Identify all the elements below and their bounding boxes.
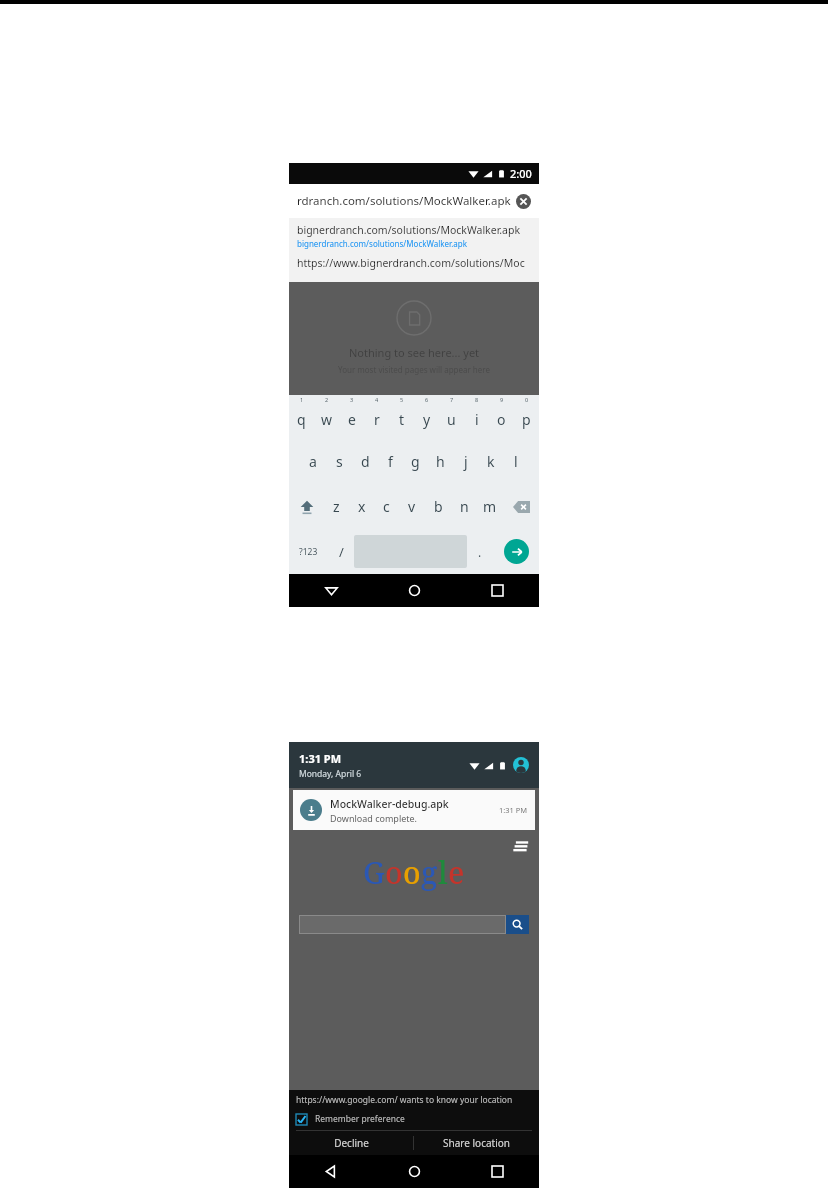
button[interactable]: j — [453, 439, 478, 484]
staticText: 0 — [525, 396, 529, 403]
button[interactable]: 3 — [339, 395, 364, 439]
staticText: c — [383, 497, 390, 516]
staticText: i — [475, 410, 479, 429]
button[interactable]: g — [403, 439, 428, 484]
button[interactable]: Back — [289, 1155, 373, 1188]
button[interactable]: Clear text — [516, 194, 531, 209]
button[interactable]: 8 — [464, 395, 489, 439]
staticText: 4 — [375, 396, 379, 403]
button[interactable]: l — [503, 439, 528, 484]
staticText: w — [321, 410, 333, 429]
staticText: d — [361, 452, 370, 471]
button[interactable]: 4 — [364, 395, 389, 439]
button[interactable]: Shift — [289, 484, 324, 529]
staticText: g — [411, 452, 420, 471]
staticText: Download complete. — [330, 812, 418, 824]
staticText: s — [336, 452, 343, 471]
staticText: bignerdranch.com/solutions/MockWalker.ap… — [297, 223, 521, 237]
button[interactable]: 1 — [289, 395, 314, 439]
staticText: Nothing to see here... yet — [349, 345, 480, 360]
staticText: o — [385, 852, 403, 893]
staticText: m — [483, 497, 497, 516]
button[interactable]: d — [352, 439, 378, 484]
button[interactable]: n — [451, 484, 477, 529]
staticText: ?123 — [299, 546, 318, 558]
button[interactable]: k — [478, 439, 503, 484]
staticText: f — [388, 452, 393, 471]
button[interactable]: Search box — [299, 915, 506, 934]
staticText: r — [374, 410, 380, 429]
staticText: v — [408, 497, 416, 516]
staticText: t — [399, 410, 405, 429]
staticText: 8 — [475, 396, 479, 403]
button[interactable]: User profile — [513, 757, 529, 773]
staticText: Your most visited pages will appear here — [338, 364, 490, 375]
button[interactable]: rdranch.com/solutions/MockWalker.apk — [289, 184, 539, 218]
button[interactable]: 9 — [489, 395, 514, 439]
staticText: k — [487, 452, 495, 471]
button[interactable]: bignerdranch.com/solutions/MockWalker.ap… — [289, 220, 539, 252]
staticText: n — [460, 497, 469, 516]
button[interactable]: Home — [373, 574, 456, 607]
staticText: a — [309, 452, 317, 471]
button[interactable]: b — [425, 484, 451, 529]
button[interactable]: 2 — [314, 395, 339, 439]
staticText: G — [363, 852, 385, 893]
button[interactable]: Recent apps — [456, 1155, 539, 1188]
button[interactable]: h — [428, 439, 453, 484]
staticText: q — [297, 410, 306, 429]
staticText: MockWalker-debug.apk — [330, 797, 449, 811]
staticText: Decline — [334, 1136, 369, 1150]
staticText: 1 — [300, 396, 304, 403]
staticText: o — [403, 852, 421, 893]
staticText: 9 — [500, 396, 504, 403]
staticText: j — [464, 452, 468, 471]
button[interactable]: s — [326, 439, 352, 484]
staticText: 2:00 — [510, 166, 532, 181]
button[interactable]: Recent apps — [456, 574, 539, 607]
button[interactable]: Remember preference — [289, 1113, 539, 1125]
staticText: x — [358, 497, 366, 516]
button[interactable]: 5 — [389, 395, 414, 439]
button[interactable]: m — [477, 484, 503, 529]
button[interactable]: Go — [504, 539, 529, 564]
staticText: p — [522, 410, 531, 429]
staticText: g — [421, 852, 438, 893]
staticText: / — [339, 543, 344, 561]
button[interactable]: v — [399, 484, 425, 529]
staticText: e — [348, 410, 356, 429]
button[interactable]: a — [300, 439, 326, 484]
staticText: 1:31 PM — [499, 805, 528, 815]
button[interactable]: Menu — [513, 838, 529, 854]
button[interactable]: ?123 — [289, 529, 328, 574]
staticText: 5 — [400, 396, 404, 403]
button[interactable]: 6 — [414, 395, 439, 439]
staticText: Share location — [443, 1136, 510, 1150]
staticText: 1:31 PM — [299, 751, 342, 766]
staticText: b — [434, 497, 443, 516]
button[interactable]: https://www.bignerdranch.com/solutions/M… — [289, 256, 539, 270]
button[interactable]: Home — [373, 1155, 456, 1188]
button[interactable]: z — [324, 484, 349, 529]
button[interactable]: Share location — [414, 1131, 539, 1155]
staticText: https://www.bignerdranch.com/solutions/M… — [297, 256, 525, 270]
button[interactable]: x — [349, 484, 374, 529]
button[interactable]: 0 — [514, 395, 539, 439]
button[interactable]: . — [467, 529, 493, 574]
button[interactable]: Decline — [289, 1131, 413, 1155]
button[interactable]: Back — [289, 574, 373, 607]
button[interactable]: f — [378, 439, 403, 484]
staticText: Remember preference — [315, 1113, 405, 1125]
staticText: l — [438, 852, 448, 893]
button[interactable]: / — [328, 529, 354, 574]
button[interactable]: c — [374, 484, 399, 529]
button[interactable]: Search — [506, 915, 529, 934]
staticText: 7 — [450, 396, 454, 403]
staticText: . — [478, 544, 482, 560]
button[interactable]: 7 — [439, 395, 464, 439]
button[interactable]: Backspace — [503, 484, 539, 529]
button[interactable]: MockWalker-debug.apk — [293, 790, 535, 830]
staticText: y — [423, 410, 431, 429]
staticText: u — [447, 410, 456, 429]
